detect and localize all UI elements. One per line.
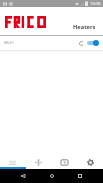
button[interactable]: Back <box>17 170 29 182</box>
button[interactable]: Power toggle <box>86 38 99 48</box>
button[interactable]: Frico <box>5 16 46 28</box>
button[interactable]: Recents <box>74 170 86 182</box>
button[interactable]: Schedule <box>51 150 77 169</box>
button[interactable]: Temperature <box>25 150 51 169</box>
staticText: Heaters <box>73 23 96 31</box>
button[interactable]: Overview <box>0 150 25 169</box>
staticText: 10:35 <box>90 1 101 7</box>
button[interactable]: Home <box>46 170 58 182</box>
button[interactable]: Settings <box>77 150 103 169</box>
button[interactable]: Refresh <box>76 38 86 48</box>
staticText: Wi-Fi <box>4 40 14 46</box>
